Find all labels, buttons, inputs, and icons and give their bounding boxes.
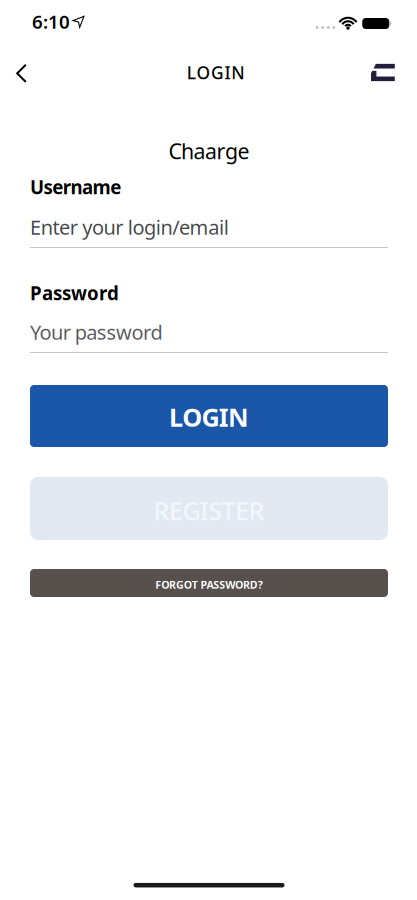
staticText: LOGIN	[169, 400, 249, 434]
staticText: REGISTER	[154, 494, 264, 527]
button[interactable]: FORGOT PASSWORD?	[30, 569, 388, 597]
staticText: Password	[30, 281, 119, 305]
staticText: Username	[30, 175, 121, 199]
staticText: 6:10	[32, 9, 70, 34]
staticText: Your password	[30, 319, 163, 345]
button[interactable]: LOGIN	[30, 385, 388, 447]
button[interactable]: Back	[8, 56, 35, 91]
button[interactable]: Chaarge	[365, 58, 401, 87]
staticText: LOGIN	[187, 61, 244, 84]
staticText: Chaarge	[168, 137, 249, 165]
staticText: FORGOT PASSWORD?	[155, 577, 263, 592]
button[interactable]: REGISTER	[30, 477, 388, 540]
staticText: Enter your login/email	[30, 214, 229, 240]
